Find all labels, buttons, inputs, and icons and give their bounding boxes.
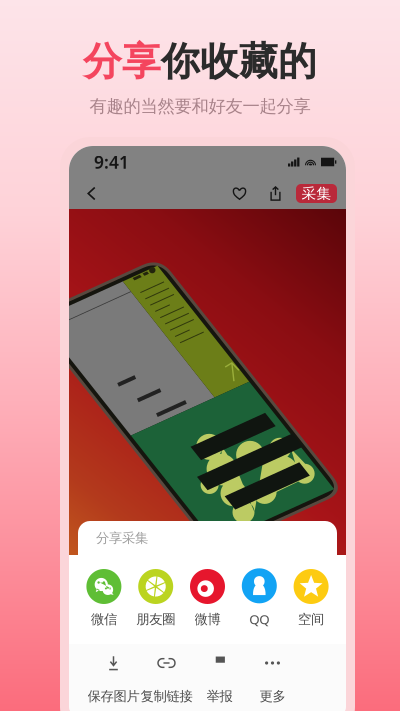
- staticText: 你收藏的: [161, 38, 317, 85]
- button[interactable]: QQ: [233, 568, 285, 628]
- staticText: 复制链接: [140, 688, 192, 704]
- button[interactable]: Share: [262, 178, 289, 209]
- button[interactable]: 采集: [296, 184, 337, 203]
- button[interactable]: Like: [226, 178, 253, 209]
- staticText: 空间: [298, 611, 324, 627]
- staticText: 保存图片: [87, 688, 139, 704]
- staticText: 采集: [301, 184, 331, 202]
- button[interactable]: 微博: [182, 569, 233, 627]
- staticText: 微博: [194, 611, 220, 627]
- staticText: 举报: [206, 688, 232, 704]
- button[interactable]: 保存图片: [87, 644, 140, 711]
- staticText: 分享: [83, 38, 161, 85]
- staticText: 分享采集: [96, 530, 148, 546]
- staticText: 有趣的当然要和好友一起分享: [89, 95, 310, 117]
- button[interactable]: Back: [77, 178, 106, 209]
- button[interactable]: 复制链接: [140, 644, 193, 711]
- button[interactable]: 朋友圈: [130, 569, 182, 627]
- staticText: 更多: [259, 688, 285, 704]
- button[interactable]: 微信: [78, 569, 130, 627]
- button[interactable]: 举报: [193, 644, 246, 711]
- staticText: 微信: [91, 611, 117, 627]
- button[interactable]: 空间: [285, 569, 337, 627]
- button[interactable]: 更多: [246, 644, 299, 711]
- staticText: 朋友圈: [136, 611, 175, 627]
- staticText: QQ: [249, 610, 269, 628]
- staticText: 9:41: [94, 150, 129, 173]
